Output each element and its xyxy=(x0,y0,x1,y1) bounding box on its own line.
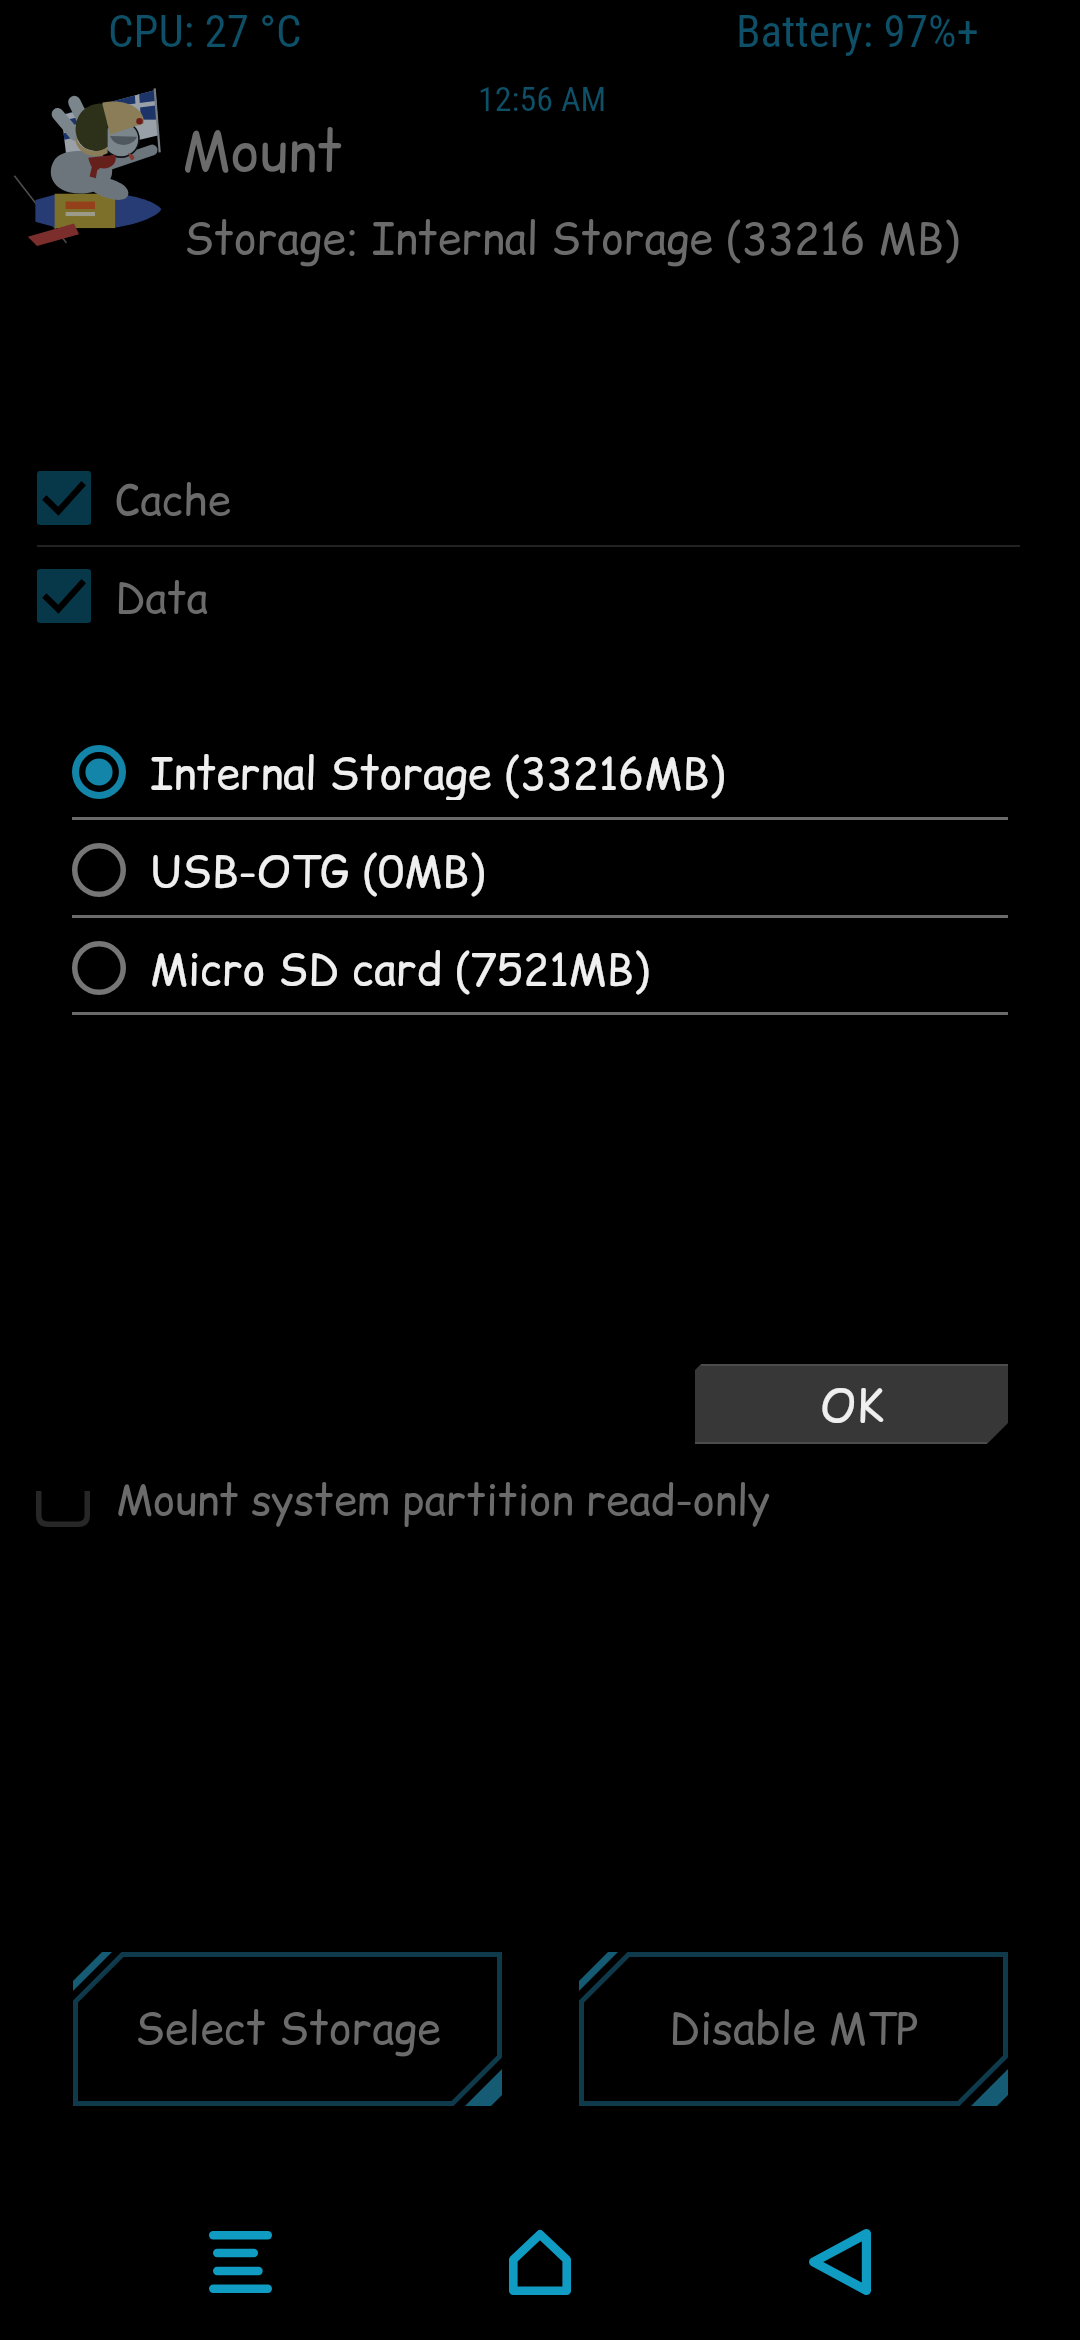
staticText: Select Storage xyxy=(135,1999,441,2059)
staticText: CPU: 27 °C xyxy=(108,5,302,58)
button[interactable]: Home xyxy=(478,2197,602,2327)
button[interactable]: Back xyxy=(778,2197,902,2327)
button[interactable]: Internal Storage (33216MB) xyxy=(72,744,1080,800)
staticText: Cache xyxy=(115,471,231,525)
button[interactable]: Micro SD card (7521MB) xyxy=(72,940,1080,996)
button[interactable]: Cache xyxy=(37,471,1080,525)
staticText: 12:56 AM xyxy=(478,79,607,119)
button[interactable]: Mount system partition read-only xyxy=(36,1464,771,1536)
staticText: Internal Storage (33216MB) xyxy=(150,744,726,800)
button[interactable]: Data xyxy=(37,569,1080,623)
button[interactable]: Select Storage xyxy=(73,1952,502,2106)
staticText: USB-OTG (0MB) xyxy=(150,842,485,898)
button[interactable]: Menu xyxy=(178,2197,302,2327)
staticText: OK xyxy=(820,1375,884,1438)
staticText: Micro SD card (7521MB) xyxy=(150,940,650,996)
staticText: Mount system partition read-only xyxy=(116,1471,771,1530)
staticText: Storage: Internal Storage (33216 MB) xyxy=(184,209,960,269)
staticText: Battery: 97%+ xyxy=(736,5,979,58)
staticText: Data xyxy=(115,569,209,623)
button[interactable]: Disable MTP xyxy=(579,1952,1008,2106)
staticText: Disable MTP xyxy=(669,1999,919,2059)
button[interactable]: OK xyxy=(695,1364,1008,1444)
button[interactable]: USB-OTG (0MB) xyxy=(72,842,1080,898)
staticText: Mount xyxy=(182,113,343,190)
